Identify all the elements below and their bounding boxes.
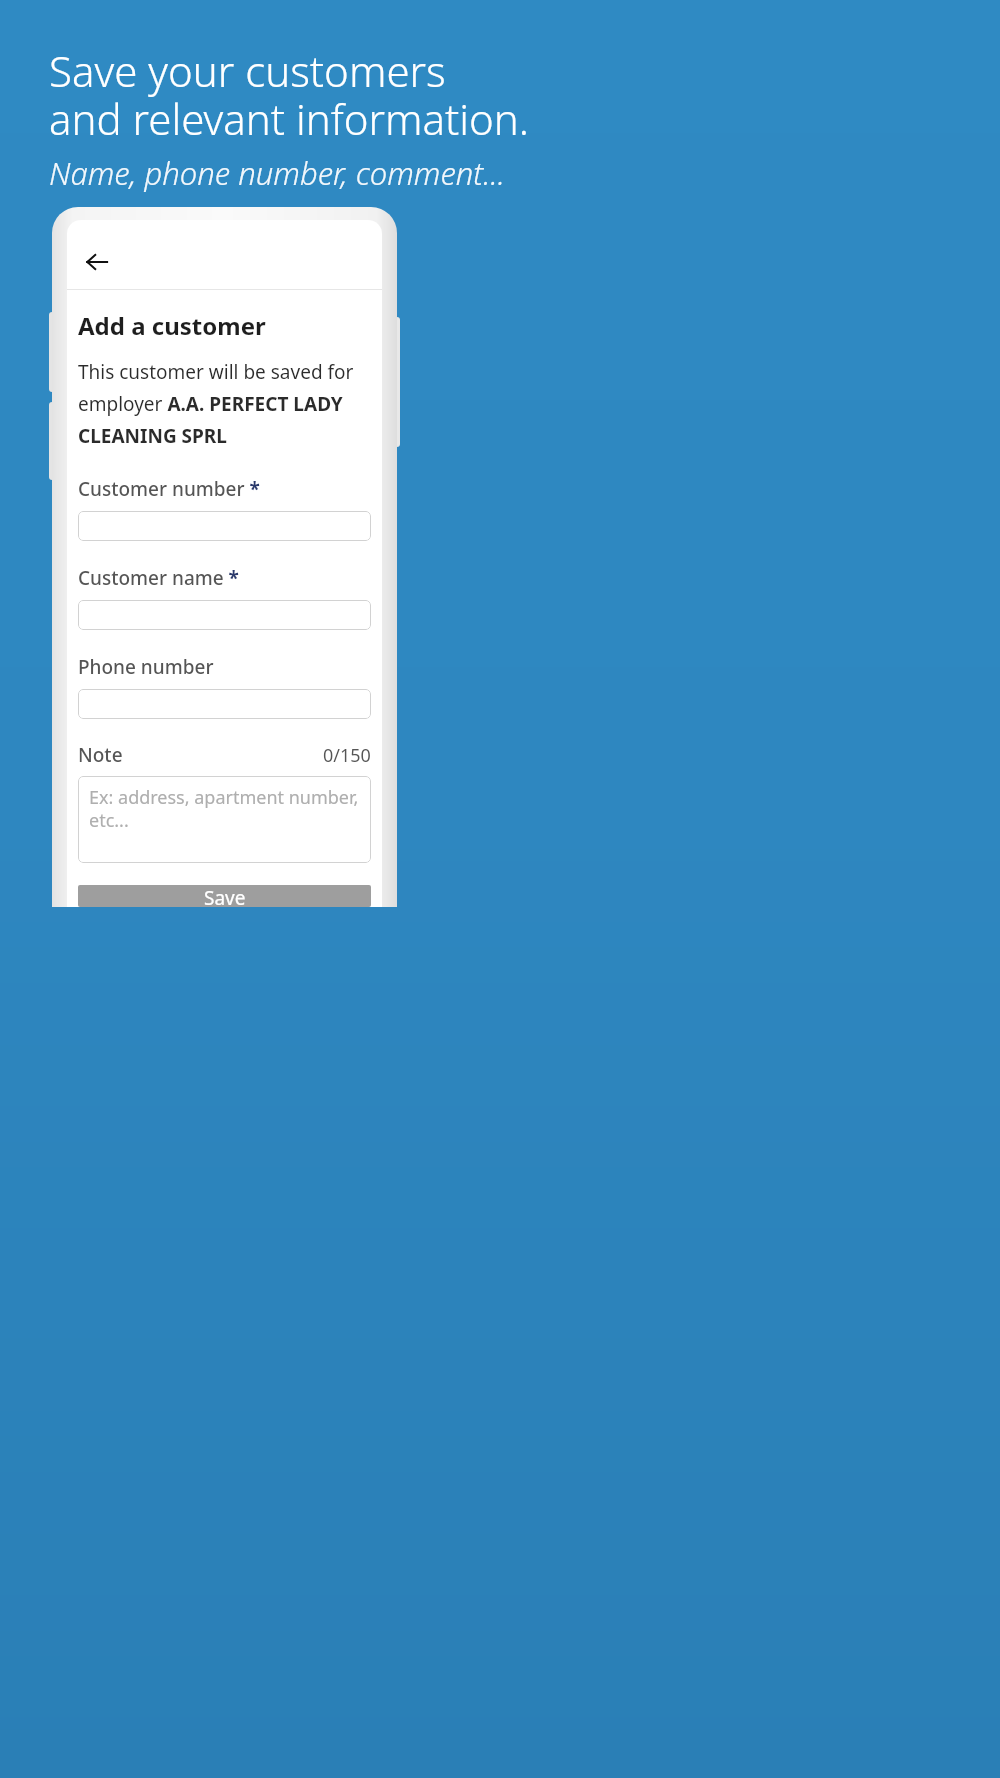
- staticText: Customer number *: [78, 476, 260, 502]
- button[interactable]: Save: [78, 885, 371, 907]
- button[interactable]: [78, 600, 371, 630]
- staticText: This customer will be saved for employer…: [78, 359, 371, 449]
- staticText: Add a customer: [78, 309, 266, 342]
- staticText: Phone number: [78, 654, 214, 680]
- button[interactable]: Back: [75, 240, 119, 284]
- button[interactable]: [78, 689, 371, 719]
- staticText: Ex: address, apartment number, etc...: [89, 785, 360, 832]
- staticText: Customer name *: [78, 565, 239, 591]
- staticText: Save: [204, 885, 246, 907]
- staticText: Save your customers and relevant informa…: [49, 42, 530, 147]
- button[interactable]: Ex: address, apartment number, etc...: [78, 776, 371, 863]
- button[interactable]: [78, 511, 371, 541]
- staticText: 0/150: [323, 743, 371, 768]
- staticText: Name, phone number, comment...: [49, 152, 505, 194]
- staticText: Note: [78, 742, 123, 768]
